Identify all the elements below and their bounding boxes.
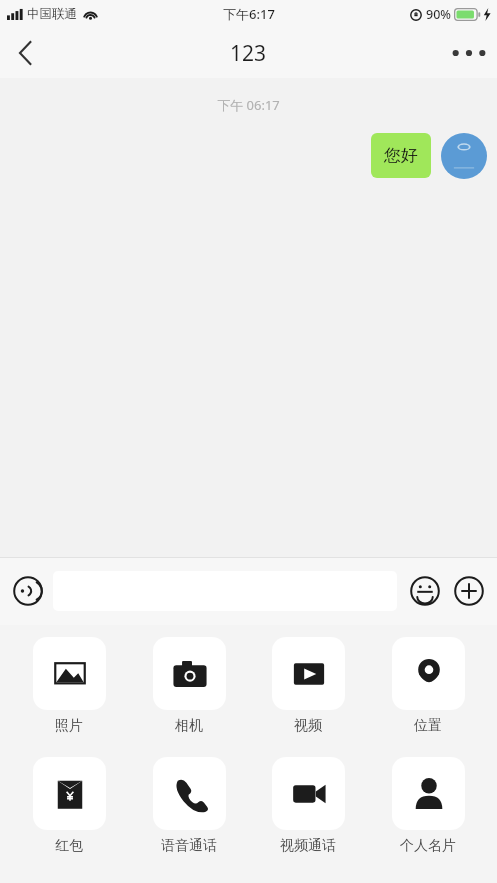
button[interactable]: 您好 — [371, 133, 431, 178]
button[interactable]: Voice input — [8, 571, 48, 611]
button[interactable]: 语音通话 — [139, 757, 239, 855]
staticText: 红包 — [55, 837, 83, 855]
staticText: 下午6:17 — [223, 5, 275, 23]
button[interactable]: 位置 — [378, 637, 478, 735]
button[interactable]: Back — [0, 28, 50, 78]
button[interactable]: Emoji — [405, 571, 445, 611]
button[interactable]: 照片 — [19, 637, 119, 735]
staticText: 您好 — [384, 145, 418, 166]
staticText: 位置 — [414, 717, 442, 735]
staticText: 下午 06:17 — [0, 96, 497, 114]
button[interactable]: 相机 — [139, 637, 239, 735]
button[interactable]: More options — [441, 28, 497, 78]
staticText: 中国联通 — [27, 6, 77, 22]
staticText: 相机 — [175, 717, 203, 735]
button[interactable]: 视频 — [258, 637, 358, 735]
button[interactable]: 红包 — [19, 757, 119, 855]
staticText: 123 — [230, 39, 267, 68]
staticText: 语音通话 — [161, 837, 217, 855]
staticText: 90% — [426, 6, 451, 23]
staticText: 个人名片 — [400, 837, 456, 855]
button[interactable]: 个人名片 — [378, 757, 478, 855]
staticText: 视频通话 — [280, 837, 336, 855]
button[interactable]: More actions — [449, 571, 489, 611]
button[interactable] — [441, 133, 487, 179]
staticText: 视频 — [294, 717, 322, 735]
staticText: 照片 — [55, 717, 83, 735]
button[interactable]: 视频通话 — [258, 757, 358, 855]
